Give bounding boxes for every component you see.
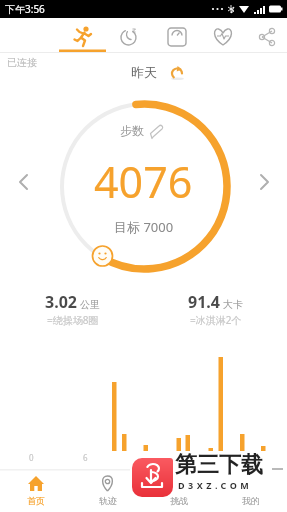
staticText: =绕操场8圈 [47,313,99,327]
staticText: =冰淇淋2个 [190,313,242,327]
staticText: 我的 [242,495,260,506]
button[interactable] [123,60,191,84]
staticText: 下午3:56 [5,2,45,16]
staticText: 6 [83,452,88,463]
staticText: 第三下载 [175,451,263,479]
staticText: 3.02 [45,291,77,313]
button[interactable] [71,470,143,512]
staticText: 首页 [27,495,45,506]
button[interactable] [241,18,287,52]
staticText: 目标 7000 [114,218,174,236]
button[interactable] [132,458,173,497]
staticText: 挑战 [170,495,188,506]
staticText: 91.4 [188,291,220,313]
button[interactable] [59,18,104,52]
button[interactable] [0,470,71,512]
button[interactable] [252,170,276,194]
staticText: 公里 [80,298,100,311]
button[interactable] [195,18,241,52]
button[interactable] [143,470,215,512]
staticText: 0 [29,452,34,463]
button[interactable] [215,470,287,512]
staticText: 已连接 [7,56,37,69]
button[interactable] [149,18,195,52]
staticText: 大卡 [223,298,243,311]
staticText: 步数 [120,123,144,138]
button[interactable] [12,170,36,194]
button[interactable] [104,18,149,52]
staticText: D3XZ.COM [178,479,253,491]
staticText: 轨迹 [99,495,117,506]
staticText: 昨天 [131,64,157,80]
staticText: 4076 [94,152,193,211]
